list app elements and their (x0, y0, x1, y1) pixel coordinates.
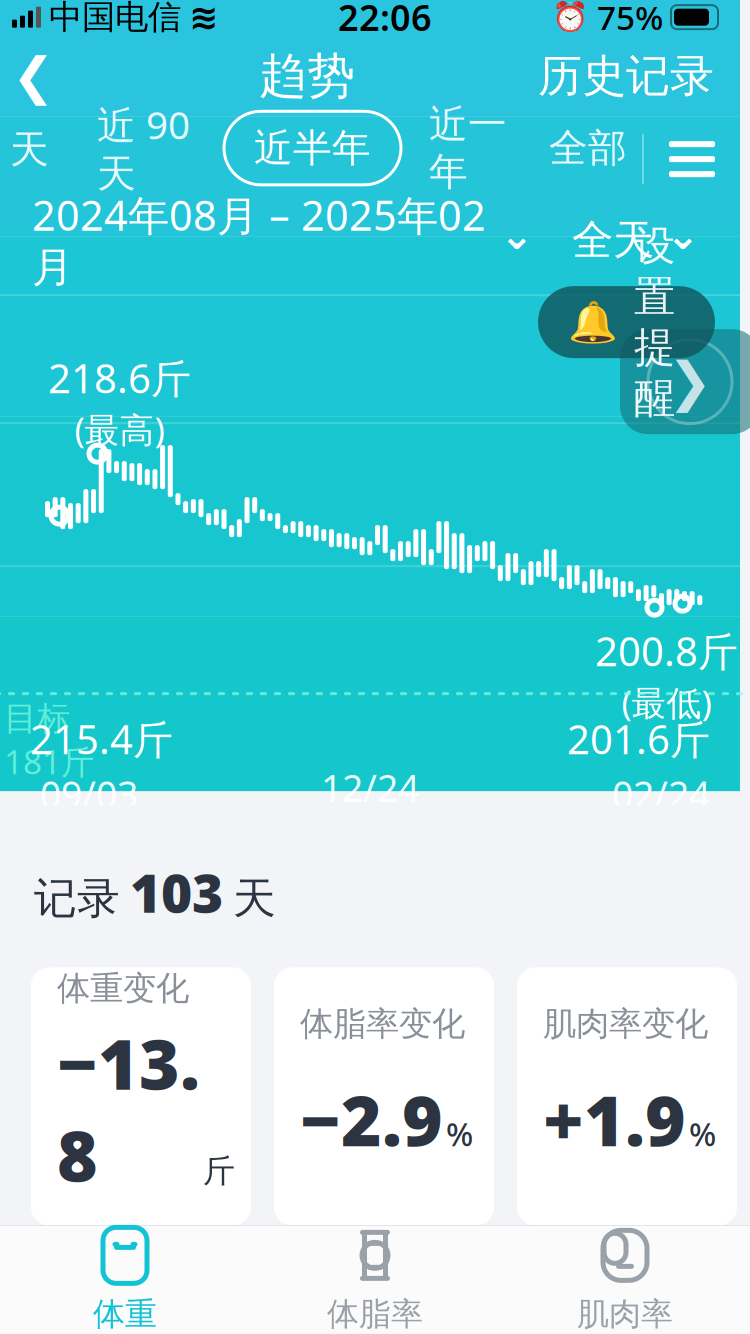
staticText: % (689, 1113, 716, 1155)
staticText: 体重变化 (57, 968, 189, 1009)
staticText: 近一年 (429, 101, 507, 196)
staticText: 181斤 (4, 739, 94, 783)
staticText: 体重 (93, 1294, 157, 1334)
staticText: ⌄ (666, 212, 700, 258)
staticText: 2024年08月 – 2025年02月 (32, 187, 486, 293)
button[interactable]: 体脂率 (250, 1225, 500, 1334)
button[interactable]: 体脂率变化 (274, 967, 494, 1225)
button[interactable]: 下一段 (620, 329, 750, 434)
staticText: 天 (233, 872, 276, 925)
staticText: +1.9 (543, 1073, 686, 1165)
staticText: 设置提醒 (634, 221, 675, 424)
button[interactable]: 体重 (0, 1225, 250, 1334)
staticText: 肌肉率 (577, 1294, 673, 1334)
staticText: 近 90 天 (97, 99, 190, 197)
button[interactable]: 全天 (572, 212, 740, 268)
staticText: ❯ (667, 351, 712, 412)
staticText: 200.8斤 (595, 624, 738, 677)
staticText: 体脂率 (327, 1294, 423, 1334)
staticText: 103 (130, 857, 223, 927)
staticText: 中国电信 (49, 0, 181, 38)
button[interactable]: 近 90 天 (97, 99, 190, 197)
staticText: 02/24 (612, 769, 710, 819)
button[interactable]: 体重变化 (31, 967, 251, 1225)
staticText: 趋势 (259, 47, 355, 106)
button[interactable]: 肌肉率变化 (517, 967, 737, 1225)
staticText: 历史记录 (538, 49, 714, 103)
staticText: 近半年 (254, 124, 371, 172)
button[interactable]: 近一年 (429, 101, 507, 196)
staticText: ⌄ (500, 212, 534, 258)
button[interactable]: 30 天 (0, 122, 49, 174)
staticText: 斤 (203, 1151, 235, 1191)
staticText: 记录 (34, 872, 120, 925)
staticText: ❮ (12, 47, 54, 105)
staticText: 全天 (572, 215, 654, 266)
button[interactable]: 2024年08月 – 2025年02月 (0, 187, 534, 293)
button[interactable]: 全部 (549, 124, 627, 172)
staticText: 22:06 (338, 0, 432, 41)
button[interactable]: 更多选项 (644, 119, 740, 199)
staticText: −2.9 (300, 1073, 443, 1165)
staticText: 12/24 (321, 763, 419, 812)
button[interactable]: 🔔 (538, 286, 715, 358)
staticText: (最低) (621, 679, 711, 725)
staticText: ⏰ (552, 0, 589, 34)
staticText: (最高) (74, 406, 164, 452)
staticText: ≋ (189, 0, 218, 37)
staticText: 75% (597, 0, 663, 39)
button[interactable]: 历史记录 (538, 41, 740, 111)
staticText: 215.4斤 (30, 712, 173, 765)
button[interactable]: 返回 (0, 41, 76, 111)
button[interactable]: 近半年 (224, 111, 401, 185)
staticText: % (446, 1113, 473, 1155)
staticText: 🔔 (568, 299, 618, 345)
staticText: 全部 (549, 124, 627, 172)
staticText: 肌肉率变化 (543, 1003, 708, 1044)
staticText: 体脂率变化 (300, 1003, 465, 1044)
staticText: 218.6斤 (48, 351, 191, 404)
staticText: 09/03 (40, 769, 138, 819)
button[interactable]: 肌肉率 (500, 1225, 750, 1334)
staticText: 201.6斤 (567, 712, 710, 765)
staticText: −13.8 (57, 1017, 200, 1201)
staticText: 目标 (4, 698, 70, 739)
staticText: 30 天 (0, 122, 49, 174)
